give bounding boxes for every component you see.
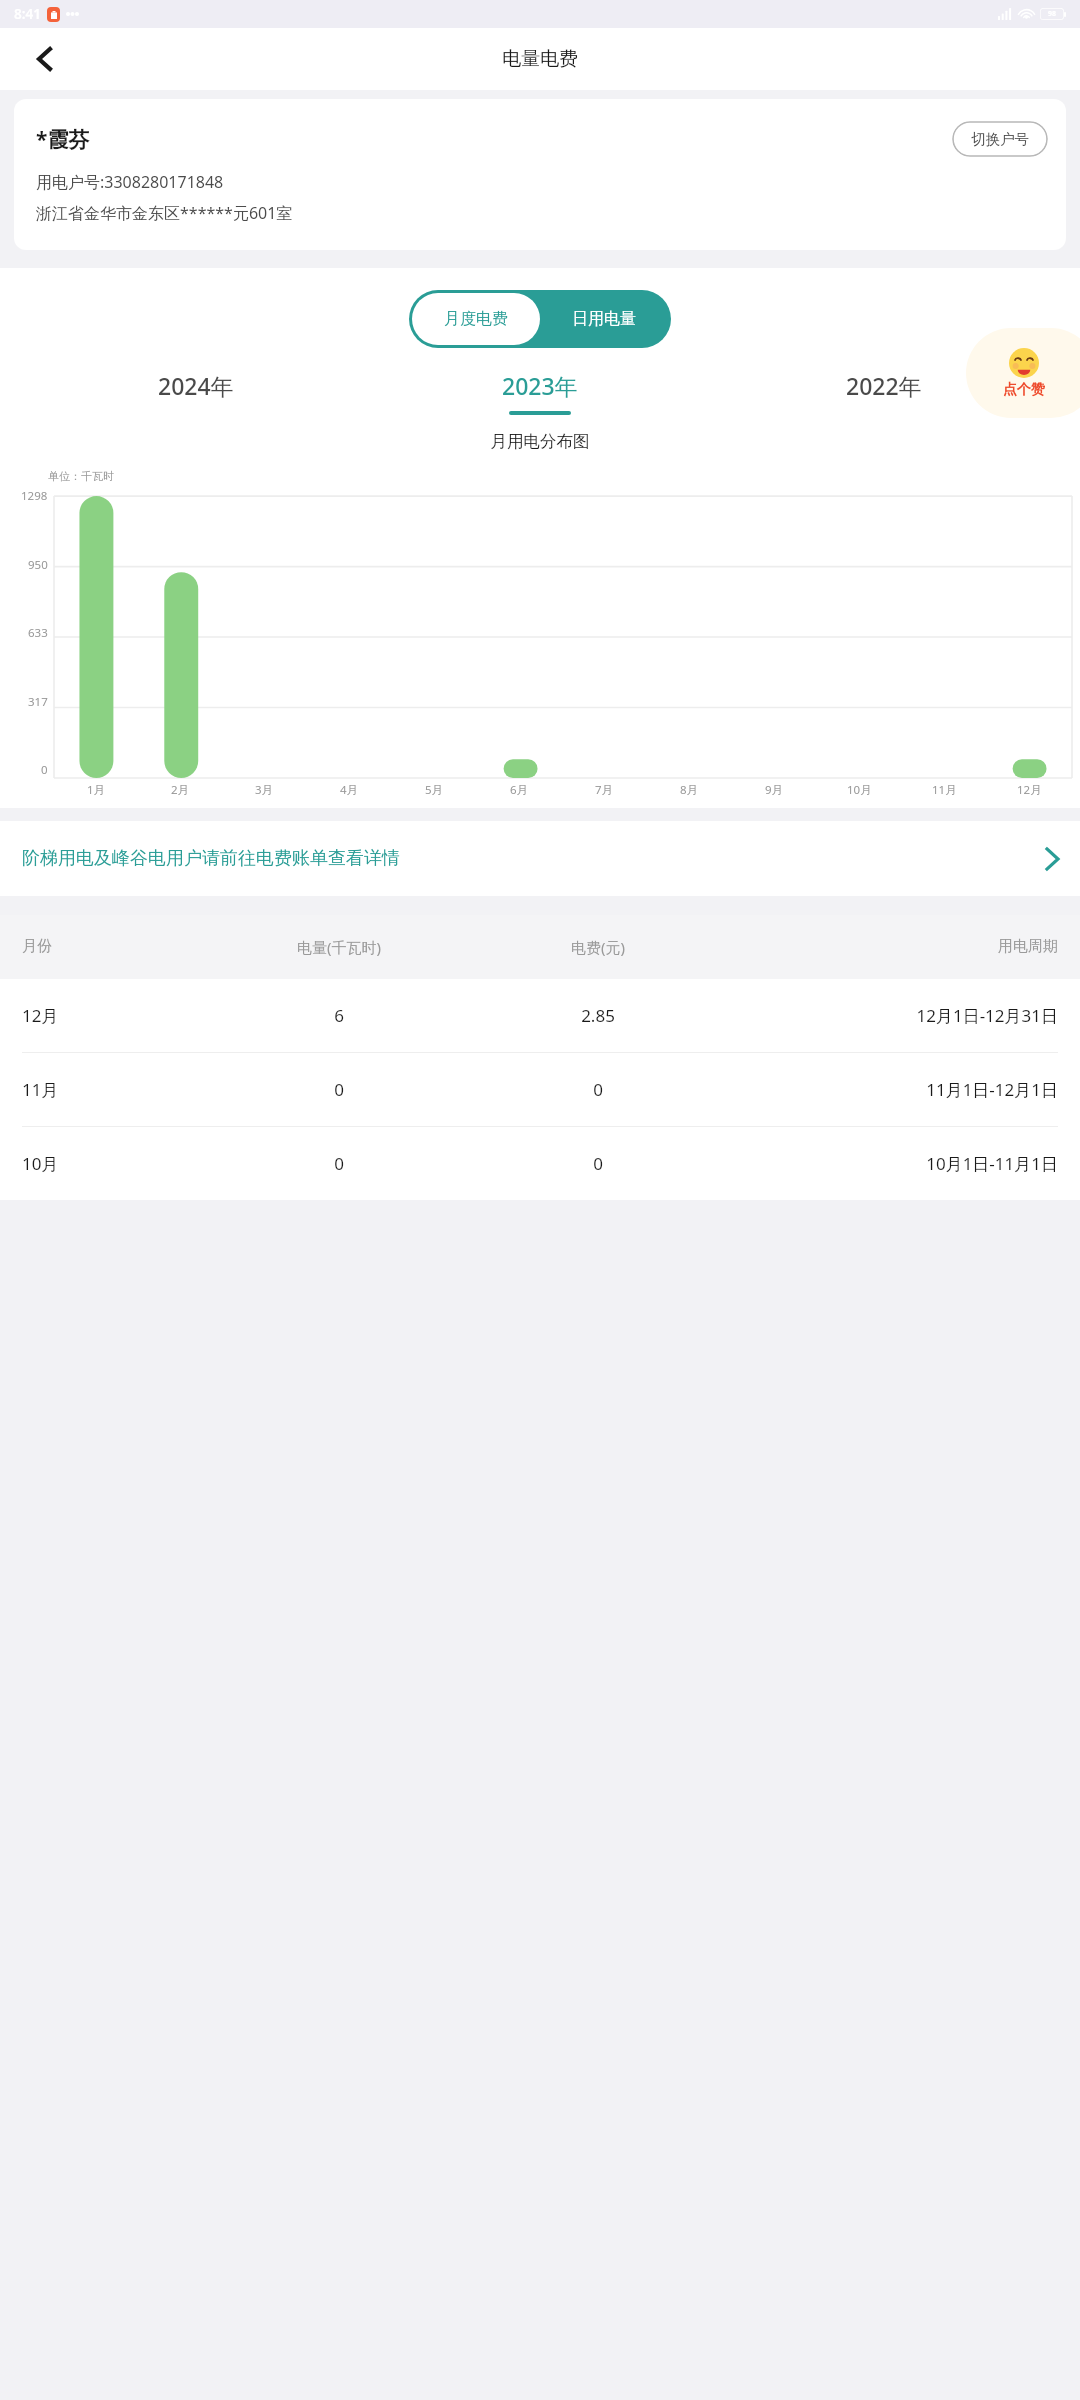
staticText: 0 <box>41 762 48 778</box>
staticText: 电费(元) <box>483 937 713 957</box>
staticText: 11月 <box>22 1078 195 1101</box>
staticText: 电量(千瓦时) <box>195 937 483 957</box>
staticText: 1298 <box>21 488 48 504</box>
staticText: 5月 <box>425 782 444 798</box>
button[interactable]: 返回 <box>22 37 66 81</box>
button[interactable]: 月度电费 <box>412 293 540 345</box>
staticText: 点个赞 <box>1003 381 1045 399</box>
staticText: 0 <box>195 1078 483 1101</box>
staticText: 98 <box>1048 9 1057 19</box>
staticText: 10月1日-11月1日 <box>713 1152 1058 1175</box>
button[interactable]: 2024年 <box>24 370 368 415</box>
staticText: 633 <box>28 625 48 641</box>
staticText: 月度电费 <box>444 309 508 329</box>
staticText: 用电户号:3308280171848 <box>36 171 224 193</box>
button[interactable]: 2022年 <box>712 370 1056 415</box>
staticText: *霞芬 <box>36 125 90 154</box>
button[interactable]: 2023年 <box>368 370 712 415</box>
staticText: 2024年 <box>158 370 234 401</box>
staticText: 单位：千瓦时 <box>48 469 114 483</box>
staticText: 0 <box>483 1152 713 1175</box>
staticText: 阶梯用电及峰谷电用户请前往电费账单查看详情 <box>22 847 400 870</box>
button[interactable]: 12月 <box>0 979 1080 1052</box>
staticText: 8:41 <box>14 5 41 23</box>
staticText: 2.85 <box>483 1004 713 1027</box>
staticText: 6 <box>195 1004 483 1027</box>
staticText: 950 <box>28 557 48 573</box>
staticText: 用电周期 <box>713 937 1058 956</box>
staticText: 电量电费 <box>502 47 578 71</box>
button[interactable]: 点个赞 <box>966 328 1080 418</box>
staticText: 12月1日-12月31日 <box>713 1004 1058 1027</box>
staticText: 0 <box>483 1078 713 1101</box>
button[interactable]: 切换户号 <box>952 121 1048 157</box>
staticText: 0 <box>195 1152 483 1175</box>
staticText: 6月 <box>510 782 529 798</box>
staticText: 浙江省金华市金东区******元601室 <box>36 202 293 224</box>
button[interactable]: *霞芬 <box>14 99 1066 250</box>
staticText: 11月 <box>932 782 957 798</box>
staticText: 切换户号 <box>971 130 1029 148</box>
staticText: 3月 <box>255 782 274 798</box>
staticText: 1月 <box>87 782 106 798</box>
staticText: 11月1日-12月1日 <box>713 1078 1058 1101</box>
staticText: 月用电分布图 <box>0 431 1080 452</box>
staticText: 10月 <box>847 782 872 798</box>
staticText: 8月 <box>680 782 699 798</box>
button[interactable]: 10月 <box>0 1127 1080 1200</box>
staticText: 2023年 <box>502 370 578 401</box>
staticText: 7月 <box>595 782 614 798</box>
staticText: 12月 <box>1017 782 1042 798</box>
staticText: 12月 <box>22 1004 195 1027</box>
staticText: 日用电量 <box>572 309 636 329</box>
staticText: 317 <box>28 694 48 710</box>
button[interactable]: 日用电量 <box>540 293 668 345</box>
button[interactable]: 阶梯用电及峰谷电用户请前往电费账单查看详情 <box>0 821 1080 896</box>
staticText: 9月 <box>765 782 784 798</box>
staticText: 2022年 <box>846 370 922 401</box>
staticText: 4月 <box>340 782 359 798</box>
staticText: 10月 <box>22 1152 195 1175</box>
staticText: 2月 <box>171 782 190 798</box>
button[interactable]: 11月 <box>0 1053 1080 1126</box>
staticText: 月份 <box>22 937 195 956</box>
